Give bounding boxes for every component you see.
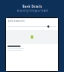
staticText: Link account	[7, 19, 24, 23]
staticText: Bank Details	[22, 5, 41, 8]
staticText: Securely link your bank	[16, 9, 47, 12]
